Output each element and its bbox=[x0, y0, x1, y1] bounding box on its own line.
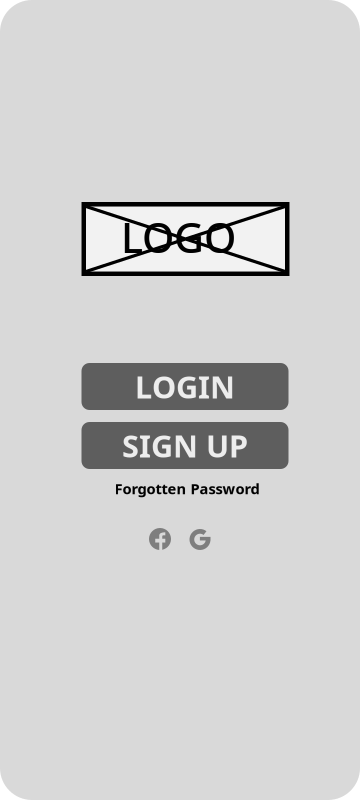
button[interactable]: Forgotten Password bbox=[102, 476, 272, 500]
button[interactable]: SIGN UP bbox=[81, 422, 288, 469]
staticText: LOGO bbox=[121, 210, 236, 264]
staticText: SIGN UP bbox=[122, 425, 248, 466]
staticText: LOGIN bbox=[135, 366, 235, 407]
button[interactable]: Continue with Facebook bbox=[143, 522, 177, 556]
staticText: Forgotten Password bbox=[114, 479, 259, 498]
button[interactable]: LOGIN bbox=[81, 363, 288, 410]
button[interactable]: Continue with Google bbox=[183, 522, 217, 556]
